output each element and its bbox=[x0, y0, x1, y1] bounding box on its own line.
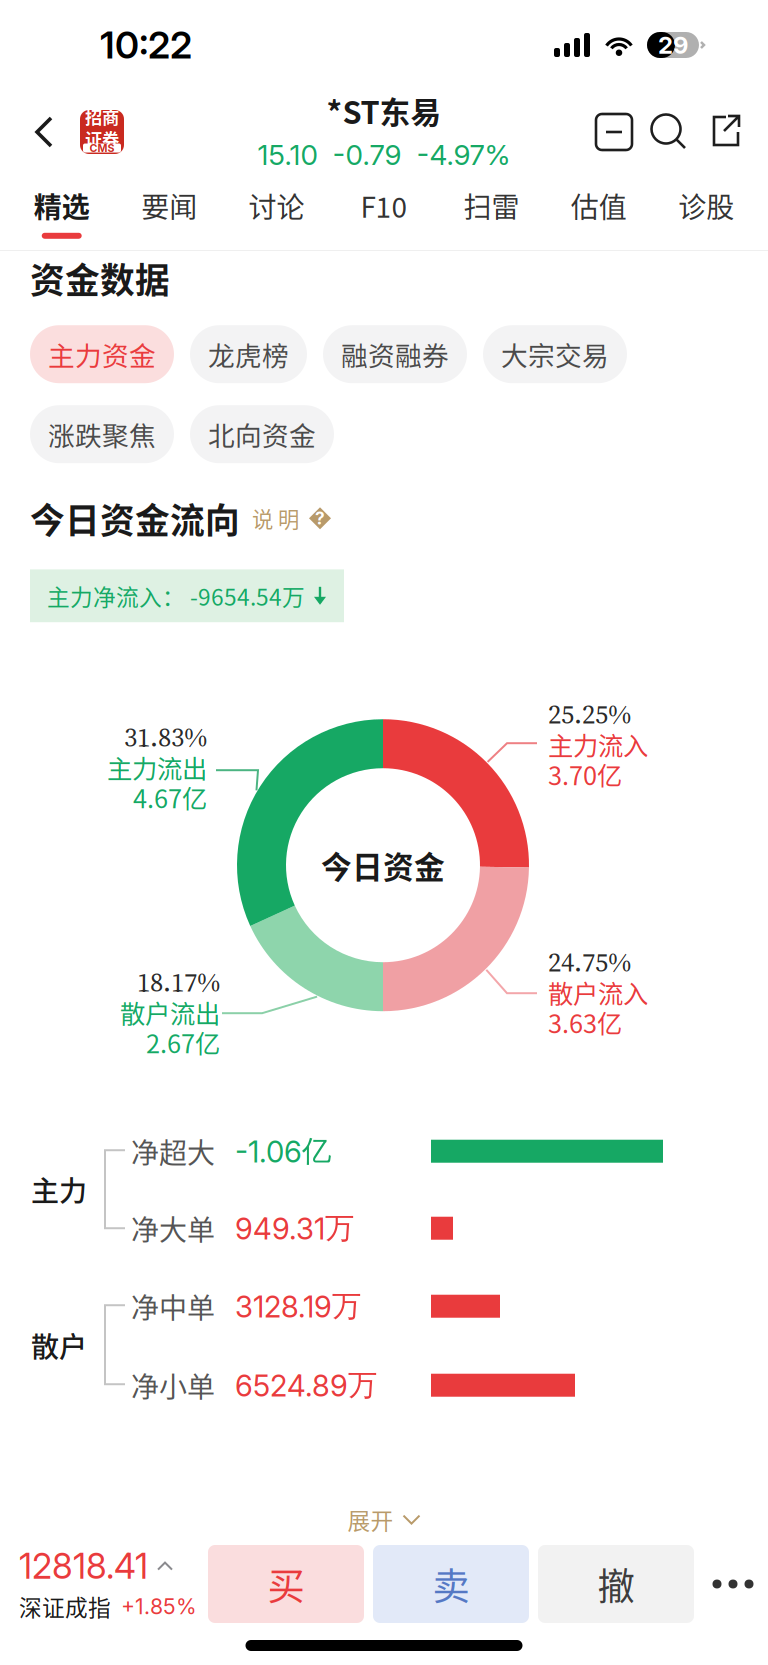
staticText: 主力资金 bbox=[48, 335, 156, 373]
staticText: -1.06亿 bbox=[235, 1133, 331, 1170]
button[interactable]: 讨论 bbox=[223, 185, 330, 239]
staticText: 估值 bbox=[571, 185, 627, 226]
button[interactable]: More bbox=[703, 1545, 763, 1623]
staticText: CMS bbox=[89, 141, 114, 154]
button[interactable]: 展开 bbox=[0, 1503, 768, 1545]
staticText: 融资融券 bbox=[341, 335, 449, 373]
staticText: 18.17% bbox=[137, 964, 220, 1000]
staticText: 主力 bbox=[31, 1169, 87, 1209]
staticText: 3128.19万 bbox=[235, 1288, 361, 1325]
staticText: *ST东易 bbox=[326, 88, 441, 133]
staticText: 24.75% bbox=[548, 944, 631, 980]
button[interactable]: 说 明 bbox=[252, 503, 331, 534]
staticText: 2.67亿 bbox=[146, 1024, 220, 1061]
staticText: 展开 bbox=[347, 1503, 393, 1536]
button[interactable]: 北向资金 bbox=[190, 405, 334, 463]
staticText: 949.31万 bbox=[235, 1210, 354, 1247]
staticText: 3.70亿 bbox=[548, 756, 622, 793]
staticText: 6524.89万 bbox=[235, 1367, 377, 1404]
staticText: 要闻 bbox=[141, 185, 197, 226]
button[interactable]: 招商证券 bbox=[80, 110, 124, 154]
staticText: 主力流入 bbox=[548, 726, 648, 763]
staticText: 证券 bbox=[85, 126, 119, 151]
staticText: 净小单 bbox=[131, 1365, 215, 1405]
staticText: 诊股 bbox=[678, 185, 734, 226]
staticText: 3.63亿 bbox=[548, 1004, 622, 1041]
staticText: 扫雷 bbox=[463, 185, 519, 226]
staticText: F10 bbox=[360, 185, 407, 226]
staticText: 买 bbox=[267, 1557, 304, 1611]
button[interactable]: 涨跌聚焦 bbox=[30, 405, 174, 463]
staticText: 龙虎榜 bbox=[208, 335, 289, 373]
staticText: -0.79 bbox=[332, 138, 401, 172]
staticText: 12818.41 bbox=[19, 1545, 148, 1587]
staticText: 撤 bbox=[597, 1557, 634, 1611]
button[interactable]: 主力资金 bbox=[30, 325, 174, 383]
button[interactable]: F10 bbox=[330, 185, 438, 239]
staticText: 31.83% bbox=[124, 719, 207, 755]
button[interactable]: Search bbox=[650, 113, 688, 151]
staticText: +1.85% bbox=[121, 1594, 197, 1619]
button[interactable]: 扫雷 bbox=[438, 185, 545, 239]
button[interactable]: 龙虎榜 bbox=[190, 325, 307, 383]
staticText: 今日资金流向 bbox=[30, 493, 240, 543]
button[interactable]: 精选 bbox=[8, 185, 115, 239]
staticText: 今日资金 bbox=[321, 843, 445, 887]
staticText: 净大单 bbox=[131, 1208, 215, 1248]
button[interactable]: 融资融券 bbox=[323, 325, 467, 383]
staticText: 卖 bbox=[432, 1557, 469, 1611]
button[interactable]: 诊股 bbox=[653, 185, 760, 239]
staticText: 说 明 bbox=[252, 503, 299, 534]
staticText: 净中单 bbox=[131, 1286, 215, 1326]
staticText: 主力流出 bbox=[107, 749, 207, 786]
button[interactable]: 估值 bbox=[545, 185, 652, 239]
staticText: 深证成指 bbox=[19, 1590, 111, 1623]
staticText: 散户流出 bbox=[120, 994, 220, 1031]
staticText: 北向资金 bbox=[208, 415, 316, 453]
button[interactable]: 撤 bbox=[538, 1545, 694, 1623]
staticText: 4.67亿 bbox=[133, 779, 207, 816]
button[interactable]: 大宗交易 bbox=[483, 325, 627, 383]
staticText: 净超大 bbox=[131, 1131, 215, 1171]
staticText: -4.97% bbox=[416, 138, 510, 172]
staticText: 29 bbox=[658, 30, 688, 59]
staticText: 25.25% bbox=[548, 696, 631, 732]
staticText: 散户 bbox=[31, 1325, 87, 1365]
button[interactable]: 买 bbox=[208, 1545, 364, 1623]
staticText: 涨跌聚焦 bbox=[48, 415, 156, 453]
staticText: 15.10 bbox=[257, 138, 317, 172]
button[interactable]: Back bbox=[22, 115, 66, 149]
button[interactable]: Minimize bbox=[596, 114, 632, 150]
staticText: 讨论 bbox=[249, 185, 305, 226]
staticText: 招商 bbox=[85, 104, 119, 129]
staticText: 大宗交易 bbox=[501, 335, 609, 373]
button[interactable]: Share bbox=[706, 113, 744, 151]
staticText: 精选 bbox=[34, 185, 90, 226]
staticText: 10:22 bbox=[100, 22, 192, 68]
staticText: 资金数据 bbox=[30, 253, 170, 303]
staticText: 散户流入 bbox=[548, 974, 648, 1011]
button[interactable]: 卖 bbox=[373, 1545, 529, 1623]
staticText: ? bbox=[315, 508, 325, 529]
button[interactable]: 要闻 bbox=[115, 185, 223, 239]
staticText: 主力净流入： -9654.54万 bbox=[47, 579, 305, 612]
